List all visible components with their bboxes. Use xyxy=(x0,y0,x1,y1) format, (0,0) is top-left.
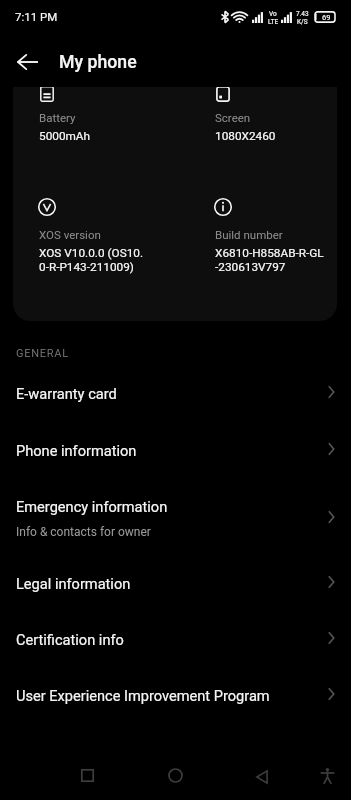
staticText: Phone information xyxy=(16,442,137,459)
staticText: E-warranty card xyxy=(16,385,117,402)
staticText: 7:11 PM xyxy=(15,10,58,23)
button[interactable]: User Experience Improvement Program xyxy=(0,666,351,722)
staticText: GENERAL xyxy=(16,347,69,360)
staticText: Vo xyxy=(269,10,277,18)
staticText: Battery xyxy=(39,111,76,124)
staticText: Build number xyxy=(215,228,283,241)
button[interactable]: Back xyxy=(238,753,285,800)
staticText: XOS V10.0.0 (OS10. 0-R-P143-211009) xyxy=(39,246,144,274)
staticText: X6810-H858AB-R-GL -230613V797 xyxy=(215,246,324,274)
staticText: 7.43 xyxy=(296,10,309,18)
staticText: Legal information xyxy=(16,575,131,592)
button[interactable]: Legal information xyxy=(0,554,351,610)
staticText: Info & contacts for owner xyxy=(16,525,151,539)
staticText: My phone xyxy=(59,52,137,73)
staticText: K/S xyxy=(297,18,308,26)
staticText: LTE xyxy=(268,18,279,26)
button[interactable]: Phone information xyxy=(0,421,351,477)
staticText: Emergency information xyxy=(16,498,168,515)
button[interactable]: Certification info xyxy=(0,610,351,666)
staticText: Screen xyxy=(215,111,251,124)
button[interactable]: E-warranty card xyxy=(0,364,351,420)
button[interactable]: Back xyxy=(4,38,51,85)
staticText: 1080X2460 xyxy=(215,129,276,143)
button[interactable]: Recents xyxy=(64,752,111,799)
staticText: Certification info xyxy=(16,631,124,648)
staticText: 69 xyxy=(322,13,331,22)
button[interactable]: Emergency information xyxy=(0,480,351,557)
button[interactable]: Home xyxy=(152,752,199,799)
button[interactable]: Accessibility xyxy=(304,752,351,799)
staticText: XOS version xyxy=(39,228,101,241)
staticText: 5000mAh xyxy=(39,129,91,143)
staticText: User Experience Improvement Program xyxy=(16,687,270,704)
